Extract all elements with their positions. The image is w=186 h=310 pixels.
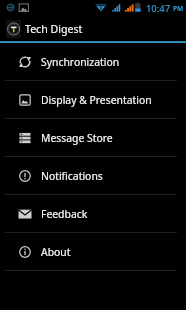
button[interactable]: Synchronization bbox=[0, 43, 186, 80]
staticText: Message Store bbox=[41, 131, 113, 145]
staticText: Tech Digest bbox=[25, 22, 83, 36]
button[interactable]: Message Store bbox=[0, 119, 186, 156]
staticText: About bbox=[41, 245, 71, 259]
staticText: Display & Presentation bbox=[41, 93, 152, 107]
button[interactable]: Feedback bbox=[0, 195, 186, 232]
button[interactable]: About bbox=[0, 233, 186, 270]
button[interactable]: Display & Presentation bbox=[0, 81, 186, 118]
staticText: PM bbox=[173, 4, 184, 13]
button[interactable]: Notifications bbox=[0, 157, 186, 194]
staticText: Synchronization bbox=[41, 55, 120, 69]
button[interactable]: Tech Digest bbox=[0, 16, 186, 41]
staticText: 10:47 bbox=[146, 2, 171, 15]
staticText: Feedback bbox=[41, 207, 88, 221]
staticText: Notifications bbox=[41, 169, 103, 183]
